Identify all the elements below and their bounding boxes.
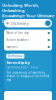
staticText: Dictionary bbox=[9, 20, 29, 26]
button[interactable]: Recent searches bbox=[4, 36, 52, 43]
button[interactable]: Favorites bbox=[4, 43, 52, 50]
staticText: The occurrence of events by chance in a … bbox=[6, 71, 49, 81]
staticText: /ˌserənˈdipədē/ · noun bbox=[6, 66, 38, 69]
staticText: Serendipity bbox=[6, 60, 29, 65]
button[interactable]: Word of the day bbox=[4, 29, 52, 36]
staticText: Recent searches bbox=[6, 38, 28, 42]
staticText: Definition bbox=[8, 54, 23, 58]
button[interactable]: Dictionary bbox=[4, 19, 52, 27]
staticText: Favorites bbox=[6, 45, 17, 49]
staticText: Word of the day bbox=[6, 31, 28, 35]
staticText: Unlocking Words, Unleashing Knowledge: Y… bbox=[2, 2, 54, 24]
